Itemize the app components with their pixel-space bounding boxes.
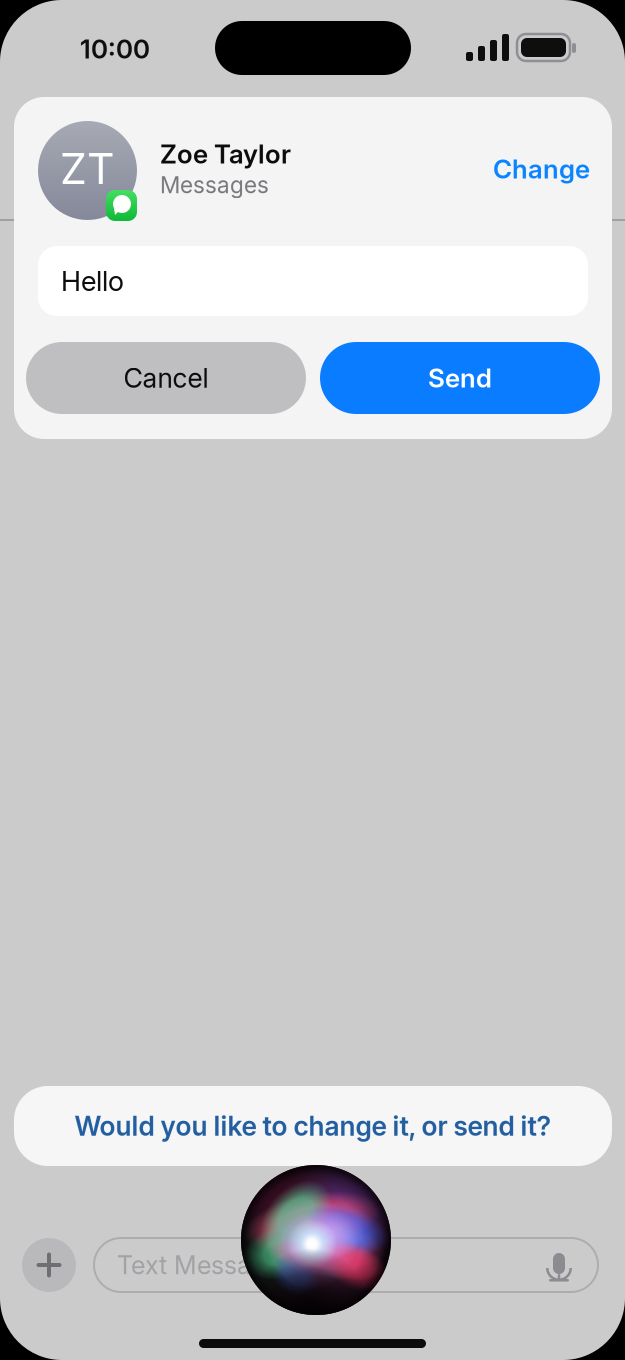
staticText: Hello [61, 264, 124, 298]
button[interactable]: Send [320, 342, 600, 414]
staticText: Would you like to change it, or send it? [74, 1110, 551, 1142]
staticText: Cancel [123, 362, 208, 394]
staticText: Text Message [117, 1250, 280, 1280]
staticText: 10:00 [80, 33, 150, 65]
staticText: Change [493, 153, 590, 185]
staticText: ZT [60, 143, 115, 194]
staticText: Zoe Taylor [160, 138, 291, 170]
staticText: Send [428, 362, 492, 394]
button[interactable]: Change [430, 141, 590, 197]
button[interactable]: Add attachment [22, 1238, 76, 1292]
button[interactable]: Cancel [26, 342, 306, 414]
staticText: Messages [160, 171, 269, 199]
